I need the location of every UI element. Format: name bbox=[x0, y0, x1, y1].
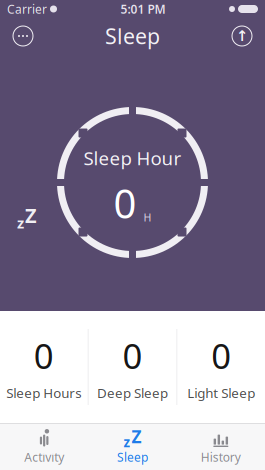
staticText: Light Sleep bbox=[187, 384, 255, 402]
staticText: H bbox=[143, 210, 151, 224]
staticText: Sleep Hour bbox=[83, 145, 181, 170]
staticText: Sleep bbox=[105, 22, 160, 50]
staticText: 0 bbox=[34, 332, 54, 378]
staticText: History bbox=[201, 449, 241, 465]
staticText: Z bbox=[131, 425, 141, 448]
button[interactable]: History bbox=[177, 424, 265, 470]
button[interactable]: Activity bbox=[0, 424, 88, 470]
staticText: 0 bbox=[122, 332, 142, 378]
staticText: Sleep Hours bbox=[6, 384, 81, 402]
staticText: 5:01 PM bbox=[120, 1, 165, 17]
staticText: Carrier bbox=[7, 1, 47, 17]
staticText: ↑ bbox=[236, 28, 248, 44]
staticText: Z bbox=[25, 202, 37, 228]
staticText: 0 bbox=[211, 332, 231, 378]
button[interactable]: Share bbox=[225, 19, 259, 53]
staticText: Activity bbox=[24, 449, 64, 465]
staticText: z bbox=[17, 213, 24, 232]
staticText: 0 bbox=[113, 176, 136, 229]
button[interactable]: z bbox=[88, 424, 177, 470]
staticText: z bbox=[123, 433, 130, 451]
button[interactable]: More options bbox=[6, 19, 40, 53]
staticText: Deep Sleep bbox=[97, 384, 168, 402]
staticText: Sleep bbox=[117, 449, 148, 465]
